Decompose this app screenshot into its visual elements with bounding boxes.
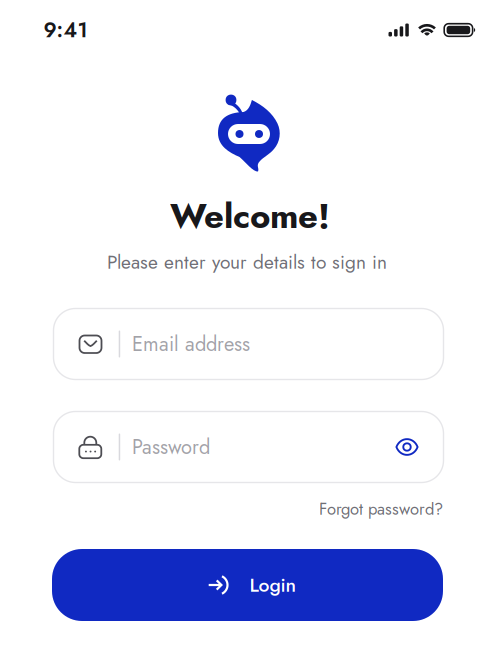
staticText: Forgot password?	[319, 497, 443, 521]
button[interactable]: Forgot password?	[319, 497, 443, 521]
staticText: Email address	[132, 329, 250, 358]
button[interactable]: Password	[53, 411, 443, 482]
staticText: 9:41	[43, 15, 87, 45]
button[interactable]: Email address	[53, 308, 443, 379]
staticText: Please enter your details to sign in	[107, 248, 387, 276]
staticText: Login	[249, 571, 296, 599]
staticText: Password	[132, 432, 210, 461]
button[interactable]: Login	[52, 549, 443, 621]
staticText: Welcome!	[170, 191, 330, 241]
